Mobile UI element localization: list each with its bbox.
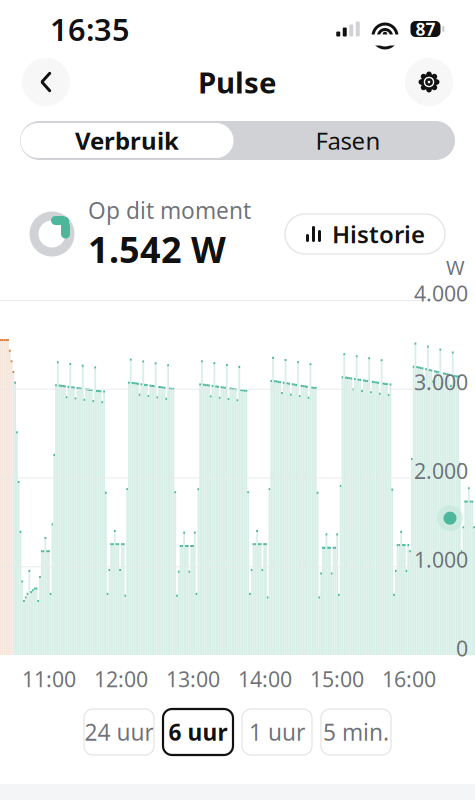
button[interactable]: Back — [22, 58, 70, 106]
button[interactable]: 5 min. — [321, 709, 391, 755]
staticText: 6 uur — [168, 717, 227, 747]
staticText: Historie — [332, 218, 425, 250]
staticText: 15:00 — [310, 665, 364, 693]
staticText: 87 — [415, 17, 435, 40]
staticText: 4.000 — [414, 279, 468, 307]
staticText: 1.542 W — [88, 225, 226, 273]
button[interactable]: 24 uur — [84, 709, 154, 755]
staticText: 0 — [456, 634, 468, 662]
staticText: 5 min. — [323, 717, 389, 747]
staticText: Fasen — [315, 125, 380, 156]
staticText: 3.000 — [414, 368, 468, 396]
staticText: Pulse — [198, 62, 277, 101]
staticText: 12:00 — [94, 665, 148, 693]
staticText: 1 uur — [249, 717, 305, 747]
button[interactable]: Verbruik — [20, 123, 233, 158]
staticText: Verbruik — [75, 125, 179, 156]
staticText: 1.000 — [414, 545, 468, 573]
staticText: 16:00 — [382, 665, 436, 693]
staticText: 16:35 — [50, 9, 130, 49]
button[interactable]: Historie — [285, 214, 445, 254]
staticText: 11:00 — [22, 665, 76, 693]
staticText: 13:00 — [166, 665, 220, 693]
staticText: Op dit moment — [88, 195, 251, 225]
button[interactable]: 1 uur — [242, 709, 312, 755]
button[interactable]: 6 uur — [163, 709, 233, 755]
staticText: W — [446, 254, 465, 281]
staticText: 14:00 — [238, 665, 292, 693]
staticText: 2.000 — [414, 456, 468, 485]
button[interactable]: Fasen — [241, 123, 454, 158]
button[interactable]: Settings — [405, 58, 453, 106]
staticText: 24 uur — [84, 717, 153, 747]
